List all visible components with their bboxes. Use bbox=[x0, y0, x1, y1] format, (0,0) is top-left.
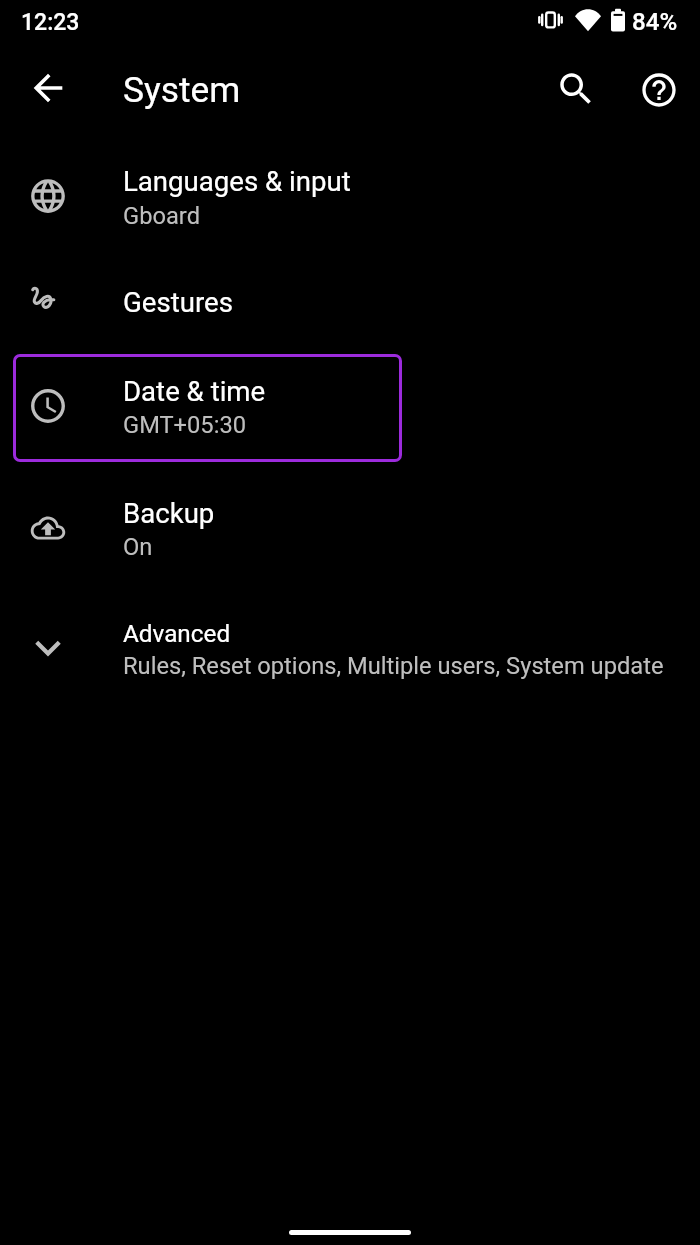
staticText: Gboard bbox=[123, 202, 200, 230]
button[interactable]: Languages & input bbox=[0, 136, 700, 257]
staticText: 12:23 bbox=[21, 9, 80, 36]
staticText: Gestures bbox=[123, 286, 233, 318]
button[interactable]: Advanced bbox=[0, 590, 700, 711]
staticText: Languages & input bbox=[123, 165, 351, 197]
staticText: Date & time bbox=[123, 375, 266, 407]
button[interactable]: Backup bbox=[0, 469, 700, 590]
staticText: On bbox=[123, 533, 153, 561]
staticText: Backup bbox=[123, 497, 215, 529]
button[interactable]: Help bbox=[631, 60, 687, 116]
button[interactable]: Date & time bbox=[0, 347, 700, 469]
staticText: 84% bbox=[632, 8, 678, 36]
staticText: Advanced bbox=[123, 619, 231, 647]
button[interactable]: Gestures bbox=[0, 257, 700, 347]
staticText: GMT+05:30 bbox=[123, 411, 247, 439]
button[interactable]: Back bbox=[20, 60, 76, 116]
staticText: Rules, Reset options, Multiple users, Sy… bbox=[123, 652, 664, 680]
button[interactable]: Search bbox=[548, 60, 604, 116]
staticText: System bbox=[123, 69, 241, 110]
